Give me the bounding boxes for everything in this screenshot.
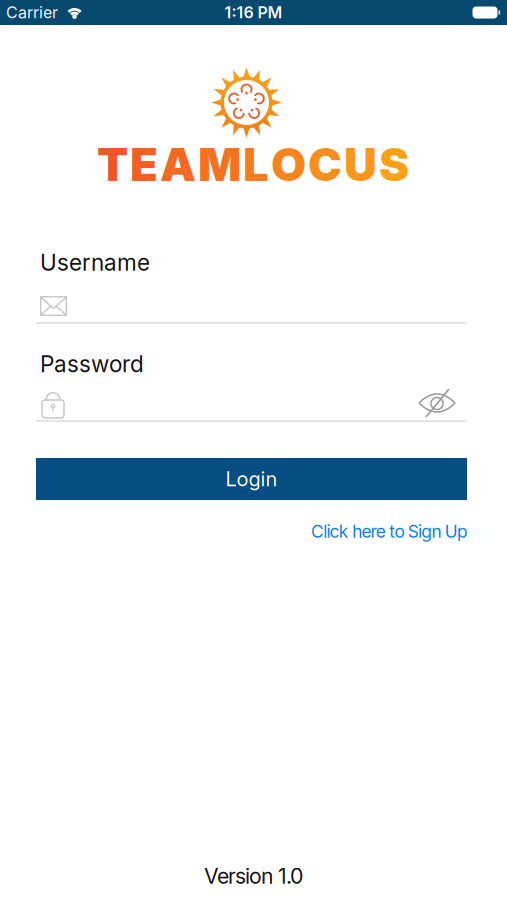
staticText: C xyxy=(308,138,342,191)
staticText: S xyxy=(379,138,409,191)
staticText: Carrier xyxy=(6,3,58,22)
button[interactable]: Login xyxy=(36,458,467,500)
staticText: U xyxy=(344,138,377,191)
staticText: Login xyxy=(225,467,277,491)
staticText: Password xyxy=(40,351,144,377)
staticText: Click here to Sign Up xyxy=(311,521,468,542)
staticText: Version 1.0 xyxy=(204,863,303,889)
staticText: M xyxy=(198,138,241,191)
staticText: A xyxy=(160,138,196,191)
staticText: T xyxy=(97,138,128,191)
staticText: Username xyxy=(40,249,150,276)
staticText: 1:16 PM xyxy=(224,3,282,22)
staticText: L xyxy=(243,138,269,191)
button[interactable]: Click here to Sign Up xyxy=(311,521,468,542)
button[interactable]: Show password xyxy=(415,389,459,417)
staticText: E xyxy=(130,138,158,191)
staticText: O xyxy=(271,138,306,191)
